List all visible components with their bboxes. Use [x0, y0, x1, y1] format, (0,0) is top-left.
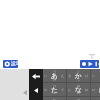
- staticText: は: [99, 86, 100, 94]
- staticText: つ: [53, 84, 57, 88]
- staticText: て: [61, 88, 65, 92]
- staticText: む: [53, 98, 57, 100]
- button[interactable]: あ: [43, 69, 66, 82]
- staticText: ひ: [92, 88, 96, 92]
- button[interactable]: Backspace: [29, 69, 43, 83]
- button[interactable]: は: [91, 83, 100, 96]
- staticText: え: [61, 74, 65, 78]
- staticText: し: [92, 74, 96, 78]
- staticText: た: [51, 86, 58, 94]
- button[interactable]: Playback controls: [80, 60, 99, 68]
- staticText: お: [53, 77, 57, 81]
- staticText: に: [68, 88, 72, 92]
- staticText: う: [53, 70, 57, 74]
- button[interactable]: な: [67, 83, 90, 96]
- staticText: の: [77, 91, 81, 95]
- staticText: と: [53, 91, 57, 95]
- staticText: こ: [77, 77, 81, 81]
- staticText: な: [75, 86, 82, 94]
- staticText: ち: [44, 88, 48, 92]
- button[interactable]: か: [67, 69, 90, 82]
- staticText: け: [85, 74, 89, 78]
- staticText: ゆ: [77, 98, 81, 100]
- staticText: い: [44, 74, 48, 78]
- staticText: 設定: [11, 61, 18, 67]
- staticText: ぬ: [77, 84, 81, 88]
- staticText: か: [75, 72, 82, 80]
- button[interactable]: さ: [91, 69, 100, 82]
- button[interactable]: 設定: [3, 60, 18, 68]
- button[interactable]: た: [43, 83, 66, 96]
- staticText: き: [68, 74, 72, 78]
- staticText: あ: [51, 72, 58, 80]
- button[interactable]: Previous: [29, 83, 43, 97]
- staticText: く: [77, 70, 81, 74]
- button[interactable]: ま: [43, 97, 66, 100]
- staticText: ね: [85, 88, 89, 92]
- button[interactable]: や: [67, 97, 90, 100]
